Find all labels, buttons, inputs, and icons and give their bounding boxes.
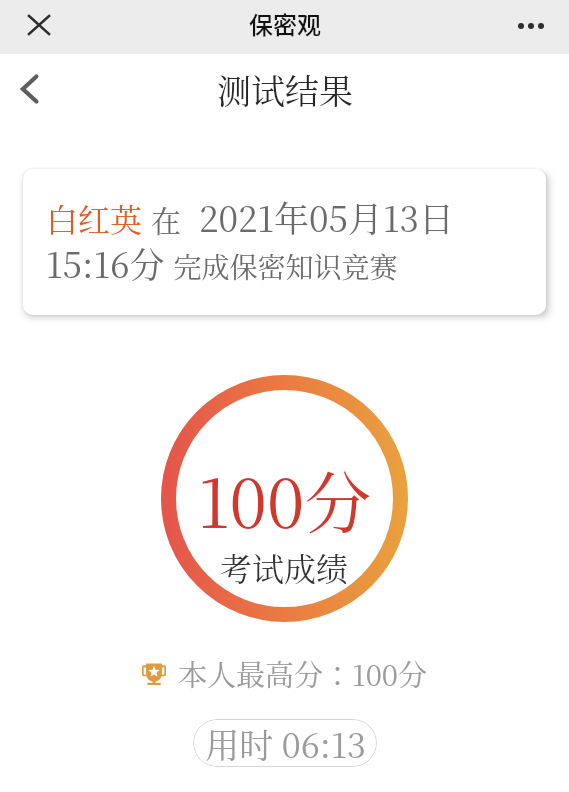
staticText: 白红英 在 2021年05月13日 15:16分 完成保密知识竞赛	[46, 192, 454, 288]
staticText: 测试结果	[217, 65, 353, 114]
button[interactable]: 本人最高分：100分	[142, 653, 427, 695]
button[interactable]: More options	[508, 3, 553, 48]
staticText: 考试成绩	[220, 544, 349, 590]
staticText: 保密观	[249, 6, 321, 41]
staticText: 用时 06:13	[205, 719, 366, 767]
staticText: 本人最高分：100分	[178, 653, 427, 695]
staticText: 100分	[198, 451, 372, 547]
button[interactable]: 白红英 在 2021年05月13日 15:16分 完成保密知识竞赛	[23, 169, 546, 315]
button[interactable]: Close	[16, 2, 61, 47]
button[interactable]: Back	[7, 65, 55, 113]
button[interactable]: 用时 06:13	[193, 719, 377, 767]
